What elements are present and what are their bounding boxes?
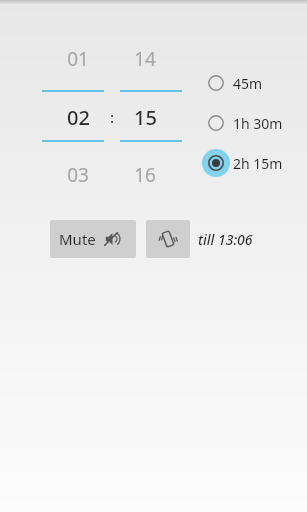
button[interactable]: 02 bbox=[52, 104, 104, 130]
staticText: 2h 15m bbox=[233, 154, 283, 173]
staticText: : bbox=[110, 107, 115, 127]
button[interactable]: 2h 15m bbox=[202, 148, 302, 178]
staticText: 45m bbox=[233, 74, 263, 93]
button[interactable]: 45m bbox=[202, 68, 302, 98]
button[interactable]: Vibrate bbox=[146, 220, 190, 258]
staticText: 15 bbox=[134, 104, 157, 130]
staticText: 1h 30m bbox=[233, 114, 283, 133]
staticText: Mute bbox=[59, 229, 96, 249]
button[interactable]: 14 bbox=[119, 46, 171, 72]
button[interactable]: 03 bbox=[52, 162, 104, 188]
staticText: 03 bbox=[67, 162, 89, 188]
staticText: 14 bbox=[134, 46, 156, 72]
staticText: 01 bbox=[67, 46, 89, 72]
button[interactable]: 1h 30m bbox=[202, 108, 302, 138]
button[interactable]: 01 bbox=[52, 46, 104, 72]
staticText: 02 bbox=[67, 104, 90, 130]
button[interactable]: 15 bbox=[119, 104, 171, 130]
button[interactable]: 16 bbox=[119, 162, 171, 188]
staticText: 16 bbox=[134, 162, 156, 188]
button[interactable]: Mute bbox=[50, 220, 136, 258]
staticText: till 13:06 bbox=[198, 230, 253, 249]
